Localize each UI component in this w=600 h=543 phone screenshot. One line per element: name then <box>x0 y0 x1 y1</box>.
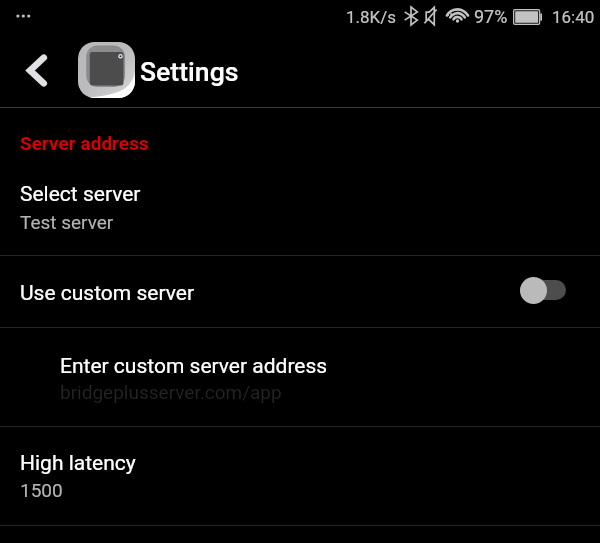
staticText: 1.8K/s <box>346 7 397 27</box>
staticText: Select server <box>20 182 141 207</box>
button[interactable]: Enter custom server address <box>0 328 600 426</box>
staticText: Server address <box>20 132 149 154</box>
button[interactable]: Use custom server <box>0 258 600 329</box>
button[interactable]: High latency <box>0 427 600 525</box>
staticText: Test server <box>20 211 114 233</box>
staticText: High latency <box>20 451 136 476</box>
staticText: bridgeplusserver.com/app <box>60 381 282 403</box>
button[interactable]: Back <box>7 36 63 107</box>
staticText: 1500 <box>20 479 63 501</box>
button[interactable]: Select server <box>0 156 600 255</box>
button[interactable]: Use custom server <box>520 278 566 309</box>
staticText: Settings <box>140 56 239 87</box>
staticText: Enter custom server address <box>60 354 328 379</box>
staticText: 16:40 <box>552 7 595 27</box>
staticText: 97% <box>474 6 508 27</box>
staticText: Use custom server <box>20 281 520 306</box>
